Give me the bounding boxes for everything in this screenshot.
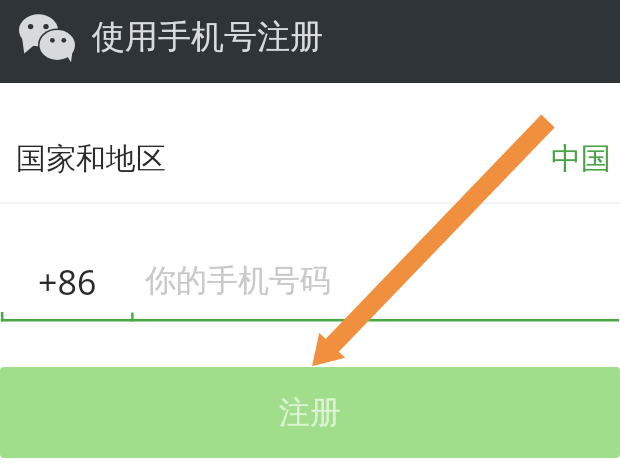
staticText: 国家和地区 — [16, 140, 166, 178]
button[interactable]: 国家和地区 — [0, 83, 620, 204]
staticText: 你的手机号码 — [145, 261, 331, 300]
staticText: 注册 — [279, 393, 341, 432]
button[interactable]: WeChat — [0, 0, 620, 83]
other: WeChat — [14, 9, 82, 67]
staticText: +86 — [38, 259, 97, 305]
button[interactable]: +86 — [0, 204, 132, 322]
button[interactable]: 注册 — [0, 367, 620, 458]
button[interactable]: 你的手机号码 — [132, 204, 620, 322]
staticText: 使用手机号注册 — [92, 16, 323, 58]
staticText: 中国 — [551, 140, 611, 178]
